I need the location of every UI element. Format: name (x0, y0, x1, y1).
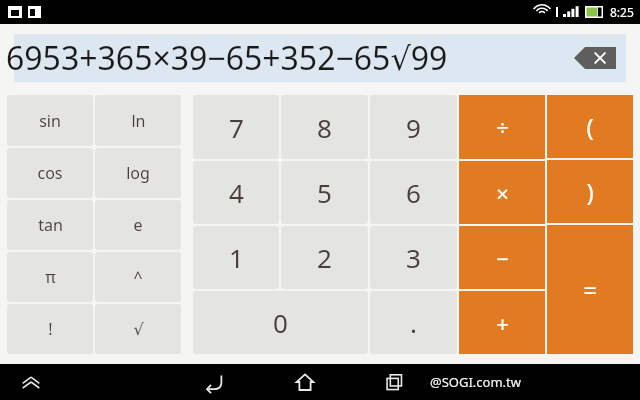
staticText: 2 (317, 240, 332, 275)
button[interactable]: ! (7, 304, 93, 354)
staticText: − (496, 243, 509, 273)
staticText: 1 (229, 240, 244, 275)
button[interactable]: ( (547, 95, 633, 158)
staticText: π (45, 266, 56, 288)
button[interactable]: √ (95, 304, 181, 354)
staticText: 3 (406, 240, 421, 275)
staticText: 8 (317, 110, 332, 145)
button[interactable]: Back (195, 364, 235, 400)
button[interactable]: . (370, 291, 457, 354)
staticText: 9 (406, 110, 421, 145)
button[interactable]: 9 (370, 95, 457, 159)
staticText: tan (38, 214, 63, 236)
staticText: × (496, 178, 509, 208)
button[interactable]: 7 (193, 95, 279, 159)
button[interactable]: Expand (14, 365, 48, 399)
button[interactable]: ÷ (459, 95, 545, 159)
button[interactable]: × (459, 161, 545, 224)
button[interactable]: Delete (574, 47, 616, 69)
staticText: ÷ (496, 112, 509, 142)
button[interactable]: ) (547, 160, 633, 223)
staticText: 7 (229, 110, 244, 145)
button[interactable]: ln (95, 95, 181, 146)
button[interactable]: 6 (370, 161, 457, 224)
staticText: ^ (133, 266, 143, 288)
staticText: ( (586, 110, 594, 143)
button[interactable]: ^ (95, 252, 181, 302)
staticText: √ (133, 320, 144, 339)
staticText: ) (586, 175, 594, 208)
staticText: e (133, 214, 143, 236)
button[interactable]: + (459, 291, 545, 354)
button[interactable]: cos (7, 148, 93, 198)
button[interactable]: 2 (281, 226, 368, 289)
staticText: ! (48, 318, 53, 340)
staticText: 5 (317, 175, 332, 210)
button[interactable]: − (459, 226, 545, 289)
button[interactable]: π (7, 252, 93, 302)
staticText: sin (39, 110, 61, 132)
staticText: = (583, 273, 597, 306)
staticText: 8:25 (610, 4, 634, 20)
button[interactable]: sin (7, 95, 93, 146)
button[interactable]: = (547, 225, 633, 354)
staticText: 4 (229, 175, 244, 210)
button[interactable]: 1 (193, 226, 279, 289)
staticText: @SOGI.com.tw (430, 373, 521, 391)
staticText: cos (37, 162, 63, 184)
staticText: log (126, 162, 150, 184)
button[interactable]: e (95, 200, 181, 250)
button[interactable]: 3 (370, 226, 457, 289)
staticText: 6953+365×39−65+352−65√99 (6, 36, 448, 80)
staticText: 6 (406, 175, 421, 210)
staticText: . (410, 305, 417, 340)
button[interactable]: 0 (193, 291, 368, 354)
button[interactable]: Home (285, 364, 325, 400)
staticText: ln (131, 110, 146, 132)
button[interactable]: 5 (281, 161, 368, 224)
button[interactable]: Recent apps (375, 364, 415, 400)
button[interactable]: 8 (281, 95, 368, 159)
button[interactable]: tan (7, 200, 93, 250)
staticText: 0 (273, 305, 288, 340)
button[interactable]: 4 (193, 161, 279, 224)
staticText: + (496, 308, 509, 338)
button[interactable]: log (95, 148, 181, 198)
